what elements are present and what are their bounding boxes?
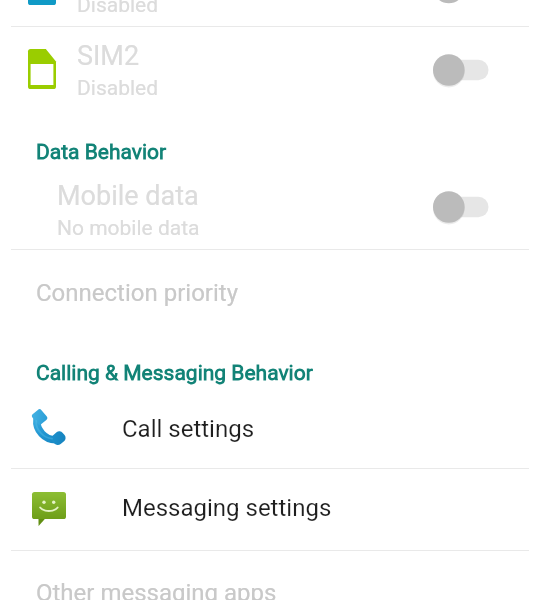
button[interactable]: Enable SIM2 (433, 53, 491, 87)
button[interactable]: Mobile data (0, 172, 540, 249)
staticText: Disabled (77, 0, 159, 18)
staticText: SIM2 (77, 40, 140, 72)
staticText: Data Behavior (36, 140, 167, 165)
staticText: Connection priority (36, 279, 238, 307)
staticText: Disabled (77, 76, 159, 101)
button[interactable]: Connection priority (0, 250, 540, 330)
button[interactable]: Other messaging apps (0, 551, 540, 600)
button[interactable]: SIM2 (0, 27, 540, 127)
button[interactable]: Call settings (0, 398, 540, 468)
staticText: Mobile data (57, 180, 199, 212)
staticText: Other messaging apps (36, 579, 277, 600)
button[interactable]: Enable mobile data (433, 190, 491, 224)
button[interactable]: Messaging settings (0, 469, 540, 550)
staticText: Calling & Messaging Behavior (36, 361, 313, 386)
staticText: Messaging settings (122, 494, 332, 522)
staticText: Call settings (122, 415, 255, 443)
button[interactable]: Disabled (0, 0, 540, 26)
staticText: No mobile data (57, 216, 200, 241)
